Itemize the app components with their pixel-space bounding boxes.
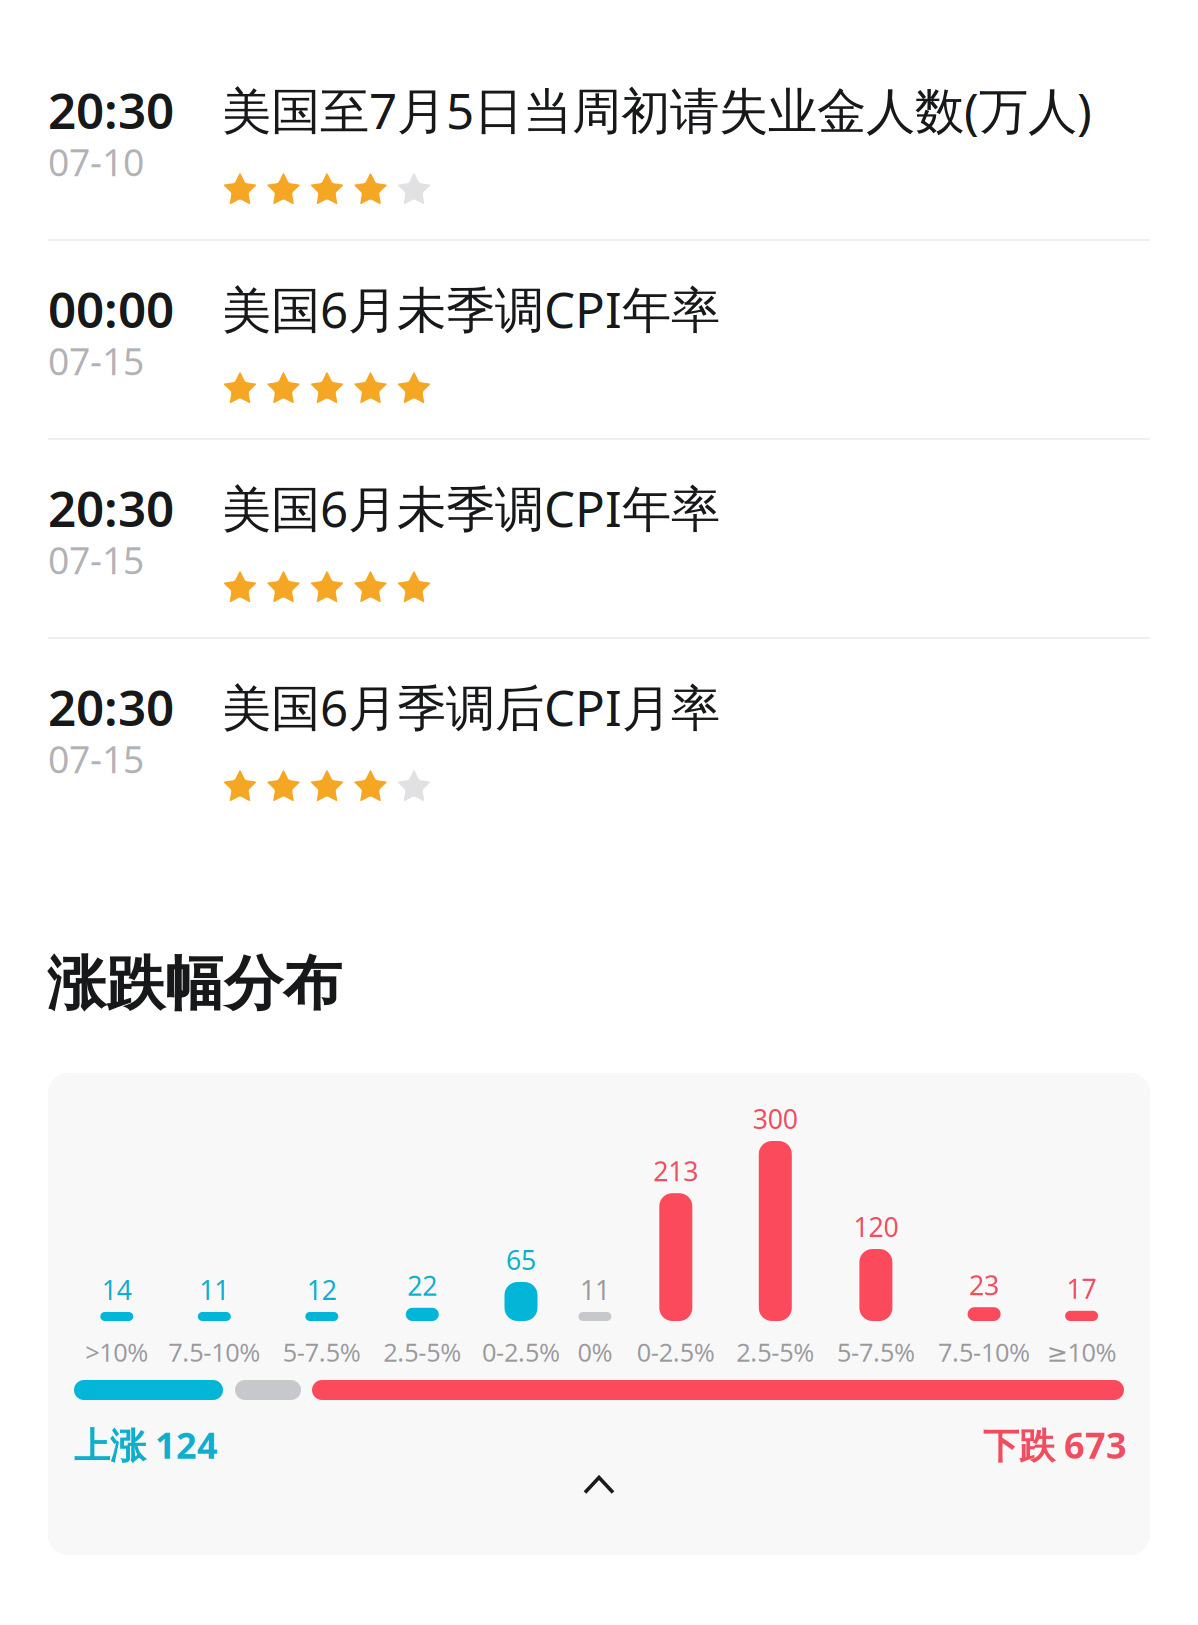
staticText: 07-15 xyxy=(48,336,144,386)
button[interactable]: 20:30 xyxy=(0,637,1198,836)
staticText: 美国6月未季调CPI年率 xyxy=(222,276,720,341)
staticText: 14 xyxy=(102,1272,132,1307)
staticText: 美国至7月5日当周初请失业金人数(万人) xyxy=(222,77,1092,142)
staticText: 11 xyxy=(199,1272,229,1307)
staticText: 7.5-10% xyxy=(938,1335,1030,1369)
staticText: 23 xyxy=(969,1267,999,1303)
staticText: 2.5-5% xyxy=(383,1335,461,1369)
staticText: 0-2.5% xyxy=(637,1335,715,1369)
button[interactable]: 20:30 xyxy=(0,40,1198,239)
staticText: 11 xyxy=(580,1272,610,1307)
staticText: 5-7.5% xyxy=(283,1335,361,1369)
staticText: 下跌 673 xyxy=(983,1421,1127,1469)
staticText: 涨跌幅分布 xyxy=(47,948,342,1020)
staticText: 213 xyxy=(653,1153,698,1189)
staticText: 17 xyxy=(1067,1271,1097,1306)
staticText: 上涨 124 xyxy=(74,1421,218,1469)
staticText: 07-15 xyxy=(48,734,144,784)
staticText: 0% xyxy=(577,1335,612,1369)
staticText: >10% xyxy=(85,1335,148,1369)
staticText: 2.5-5% xyxy=(736,1335,814,1369)
staticText: 美国6月未季调CPI年率 xyxy=(222,475,720,540)
staticText: 65 xyxy=(506,1242,536,1277)
staticText: 20:30 xyxy=(48,77,174,142)
staticText: 5-7.5% xyxy=(837,1335,915,1369)
staticText: 7.5-10% xyxy=(168,1335,260,1369)
staticText: 美国6月季调后CPI月率 xyxy=(222,674,720,739)
staticText: 22 xyxy=(407,1268,437,1303)
staticText: 120 xyxy=(853,1209,898,1244)
staticText: 07-15 xyxy=(48,535,144,585)
staticText: 20:30 xyxy=(48,475,174,540)
staticText: 00:00 xyxy=(48,276,174,341)
staticText: 300 xyxy=(753,1101,798,1136)
staticText: 07-10 xyxy=(48,137,144,187)
staticText: ≥10% xyxy=(1047,1335,1117,1369)
button[interactable]: 00:00 xyxy=(0,239,1198,438)
staticText: 12 xyxy=(307,1272,337,1307)
staticText: 0-2.5% xyxy=(482,1335,560,1369)
staticText: 20:30 xyxy=(48,674,174,739)
button[interactable]: 20:30 xyxy=(0,438,1198,637)
